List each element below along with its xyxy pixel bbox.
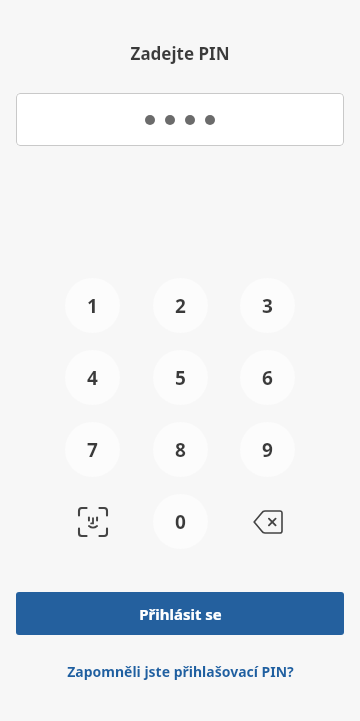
staticText: 8	[175, 437, 186, 463]
staticText: 1	[87, 293, 98, 319]
staticText: Zapomněli jste přihlašovací PIN?	[67, 662, 294, 681]
staticText: Zadejte PIN	[0, 42, 360, 65]
button[interactable]: 8	[153, 422, 208, 477]
staticText: 9	[262, 437, 273, 463]
button[interactable]: 4	[65, 350, 120, 405]
button[interactable]: 0	[153, 494, 208, 549]
button[interactable]: 7	[65, 422, 120, 477]
staticText: 0	[175, 509, 186, 535]
button[interactable]: 3	[240, 278, 295, 333]
button[interactable]: 1	[65, 278, 120, 333]
staticText: 3	[262, 293, 273, 319]
staticText: 5	[175, 365, 186, 391]
staticText: Přihlásit se	[139, 604, 222, 624]
button[interactable]	[16, 93, 344, 146]
button[interactable]: 2	[153, 278, 208, 333]
staticText: 6	[262, 365, 273, 391]
button[interactable]: Zapomněli jste přihlašovací PIN?	[0, 658, 360, 684]
staticText: 4	[87, 365, 98, 391]
button[interactable]: 9	[240, 422, 295, 477]
staticText: 2	[175, 293, 186, 319]
button[interactable]: 6	[240, 350, 295, 405]
button[interactable]: 5	[153, 350, 208, 405]
button[interactable]: Přihlásit pomocí obličeje	[65, 494, 120, 549]
button[interactable]: Přihlásit se	[16, 592, 344, 635]
staticText: 7	[87, 437, 98, 463]
button[interactable]: Smazat	[240, 494, 295, 549]
